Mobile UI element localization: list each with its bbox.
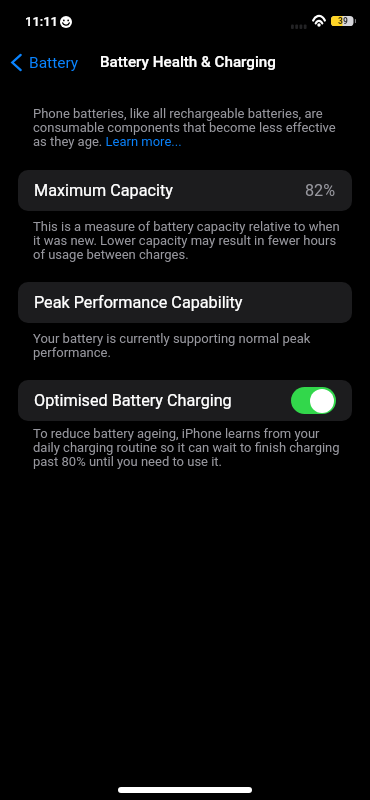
staticText: Phone batteries, like all rechargeable b… [33,106,345,149]
button[interactable]: Peak Performance Capability [18,282,352,323]
staticText: Battery Health & Charging [100,53,276,71]
button[interactable]: Maximum Capacity [18,170,352,211]
staticText: To reduce battery ageing, iPhone learns … [33,426,345,469]
staticText: Maximum Capacity [34,181,173,200]
staticText: Peak Performance Capability [34,293,243,312]
staticText: 82% [305,181,336,200]
button[interactable]: Battery [9,53,79,72]
staticText: 11:11 [25,14,59,29]
staticText: Battery [29,54,79,72]
staticText: 39 [338,16,348,26]
staticText: Your battery is currently supporting nor… [33,331,345,360]
button[interactable]: Optimised Battery Charging [18,380,352,421]
button[interactable]: Optimised Battery Charging toggle [291,387,336,414]
staticText: This is a measure of battery capacity re… [33,219,345,262]
staticText: Optimised Battery Charging [34,391,232,410]
